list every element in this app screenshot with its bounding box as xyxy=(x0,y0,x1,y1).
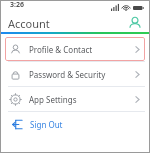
button[interactable]: App Settings xyxy=(5,87,145,111)
staticText: Password & Security xyxy=(29,69,106,80)
staticText: Profile & Contact xyxy=(29,44,93,55)
staticText: 3:26 xyxy=(10,0,24,10)
button[interactable]: Sign Out xyxy=(0,112,150,136)
button[interactable]: Profile & Contact xyxy=(5,37,145,61)
staticText: Account xyxy=(8,16,50,31)
staticText: App Settings xyxy=(29,94,77,105)
staticText: Sign Out xyxy=(30,119,63,130)
button[interactable]: Profile xyxy=(128,16,142,30)
button[interactable]: Password & Security xyxy=(5,62,145,86)
